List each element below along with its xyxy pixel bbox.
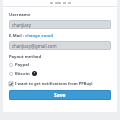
button[interactable]: I want to get notifications from PPBuyl (9, 80, 111, 87)
staticText: Save (54, 92, 66, 99)
button[interactable]: chanjiacy@gmail.com (9, 41, 111, 50)
staticText: E-Mail : (9, 33, 25, 39)
button[interactable]: Bitcoin (9, 70, 111, 77)
button[interactable]: Paypal (9, 62, 111, 68)
staticText: Username (9, 12, 31, 18)
staticText: Payout method (9, 54, 42, 60)
staticText: Paypal (15, 62, 29, 68)
staticText: Bitcoin (15, 71, 30, 77)
staticText: chanjiacy (12, 22, 32, 28)
staticText: change email (25, 33, 53, 39)
staticText: I want to get notifications from PPBuyl (15, 81, 93, 86)
button[interactable]: Save (9, 90, 111, 100)
button[interactable]: change email (25, 33, 53, 39)
other: Bitcoin info (32, 71, 37, 76)
button[interactable]: chanjiacy (9, 20, 111, 29)
staticText: chanjiacy@gmail.com (12, 43, 57, 49)
